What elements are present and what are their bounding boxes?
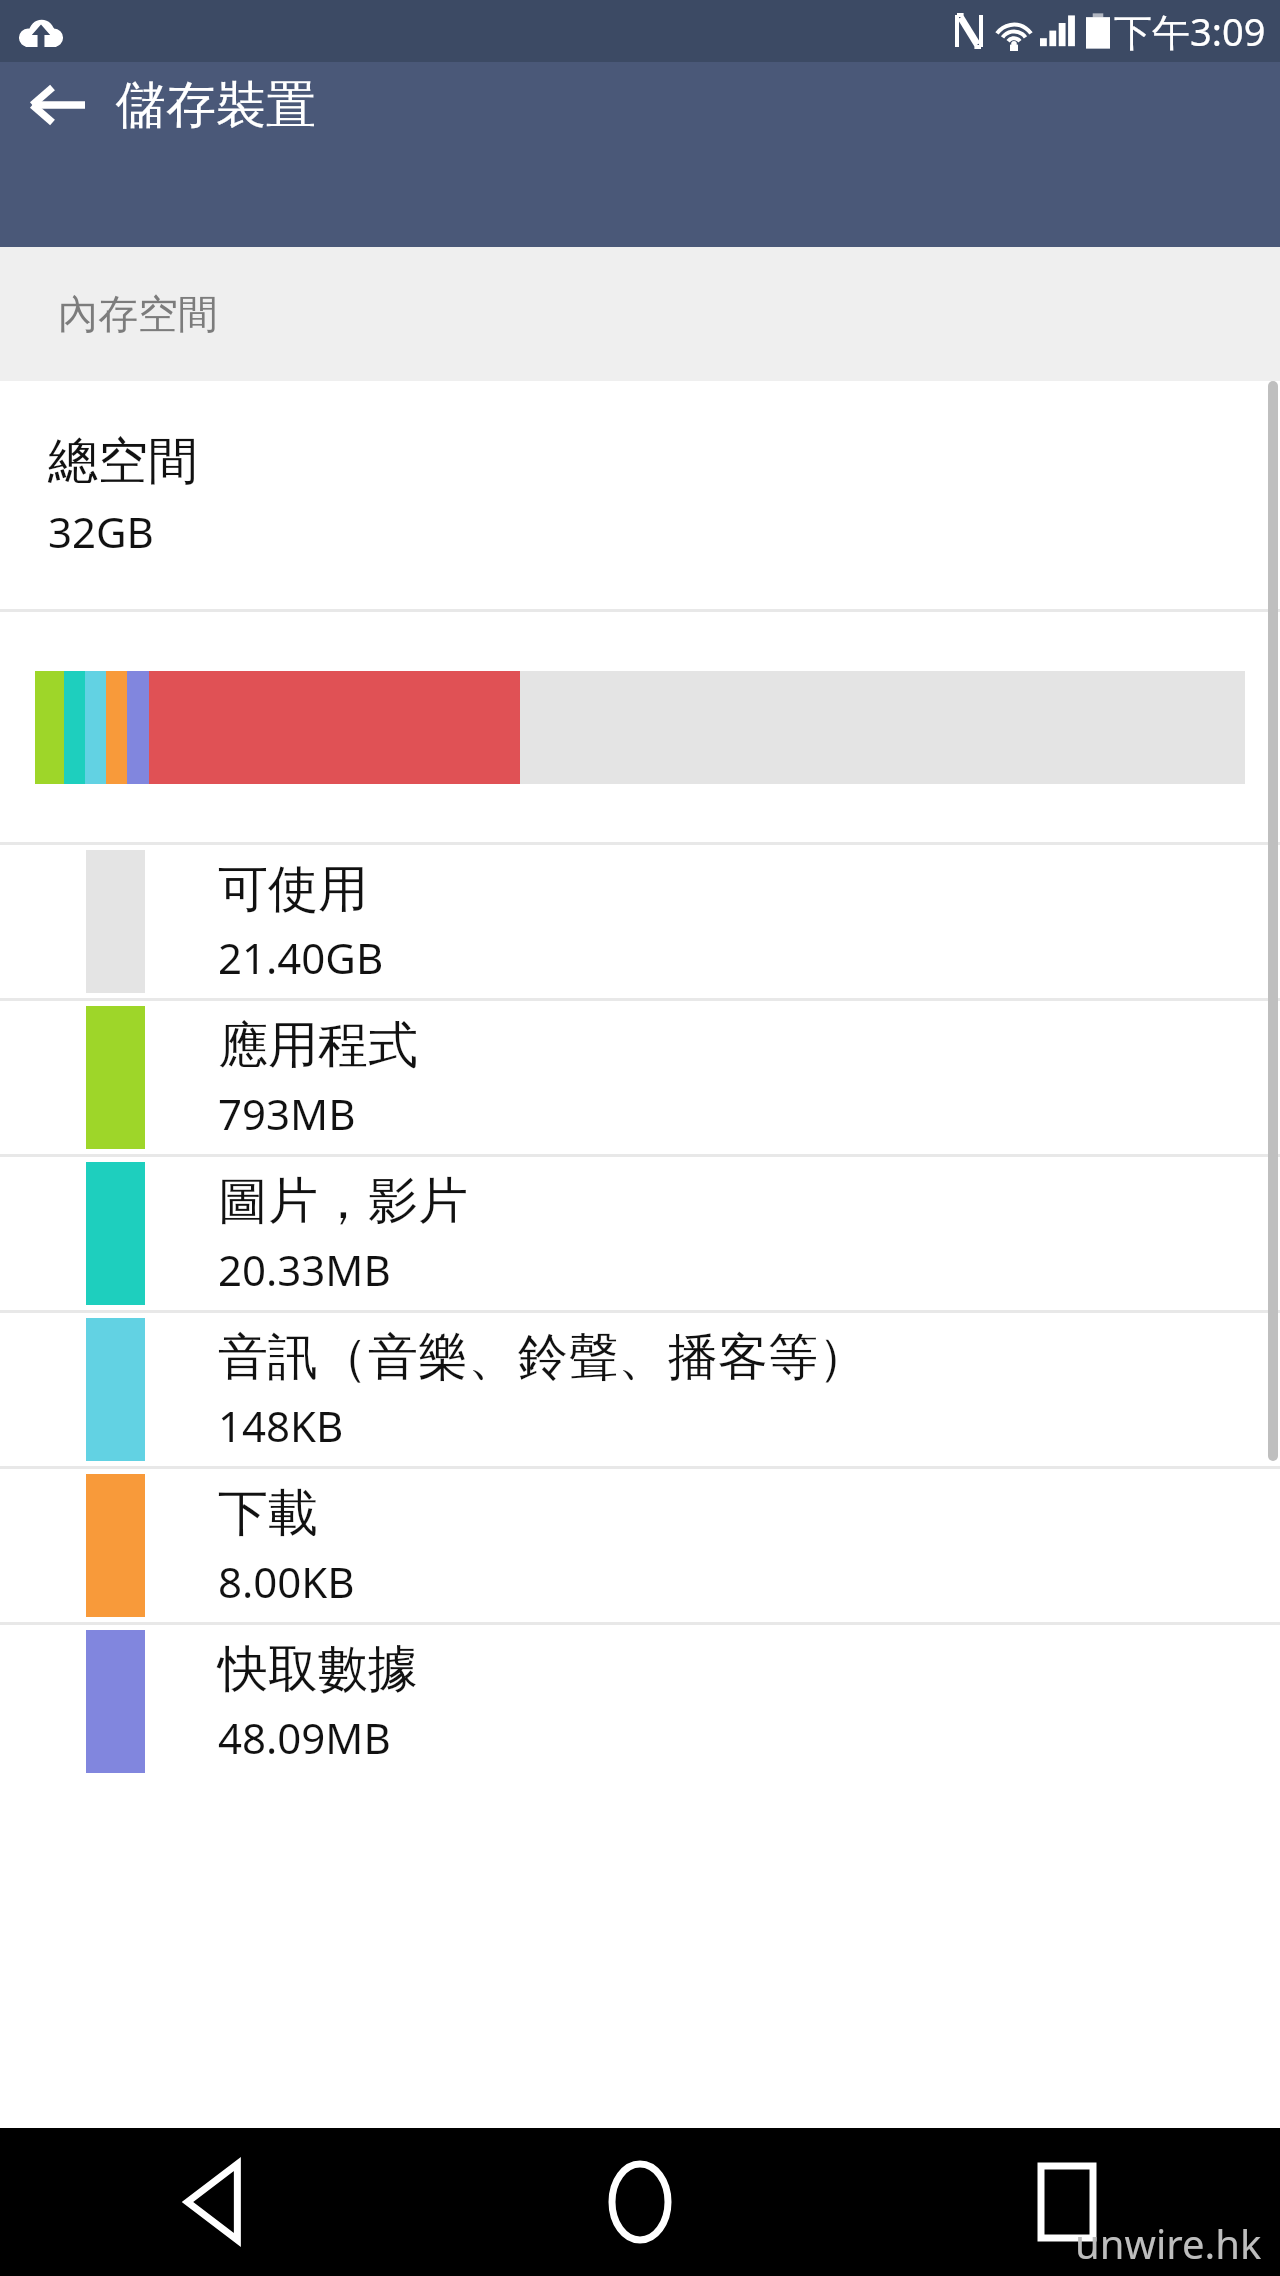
staticText: 148KB [218, 1397, 344, 1454]
staticText: 8.00KB [218, 1553, 355, 1610]
staticText: 20.33MB [218, 1241, 391, 1298]
staticText: unwire.hk [1075, 2216, 1262, 2270]
staticText: 下午3:09 [1114, 5, 1266, 57]
staticText: 32GB [48, 503, 154, 560]
staticText: 可使用 [218, 858, 368, 921]
staticText: 48.09MB [218, 1709, 391, 1766]
staticText: 儲存裝置 [116, 74, 316, 137]
button[interactable]: 可使用 [0, 845, 1280, 998]
staticText: 音訊（音樂、鈴聲、播客等） [218, 1326, 868, 1389]
button[interactable]: Recent apps [853, 2128, 1280, 2276]
staticText: 下載 [218, 1482, 318, 1545]
staticText: 總空間 [48, 430, 198, 493]
button[interactable]: 圖片，影片 [0, 1157, 1280, 1310]
button[interactable]: 應用程式 [0, 1001, 1280, 1154]
button[interactable]: 下載 [0, 1469, 1280, 1622]
button[interactable]: Back [0, 2128, 426, 2276]
staticText: 內存空間 [58, 289, 218, 339]
staticText: 21.40GB [218, 929, 384, 986]
staticText: 應用程式 [218, 1014, 418, 1077]
button[interactable]: Back [14, 62, 100, 148]
staticText: 快取數據 [218, 1638, 418, 1701]
button[interactable]: Home [426, 2128, 853, 2276]
button[interactable]: 快取數據 [0, 1625, 1280, 1778]
button[interactable]: 音訊（音樂、鈴聲、播客等） [0, 1313, 1280, 1466]
staticText: 圖片，影片 [218, 1170, 468, 1233]
staticText: 793MB [218, 1085, 356, 1142]
